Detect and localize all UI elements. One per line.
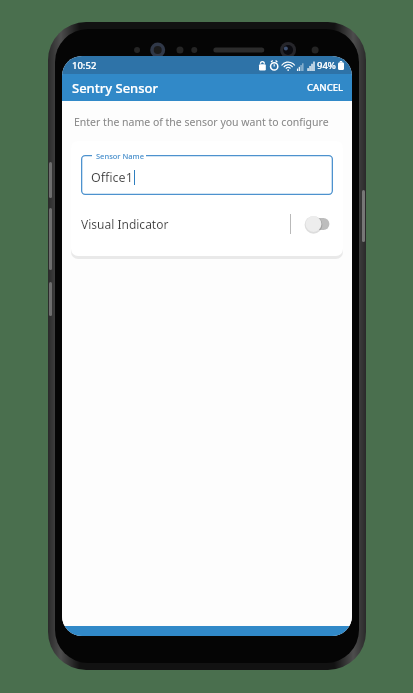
staticText: 10:52 xyxy=(72,59,97,72)
staticText: CANCEL xyxy=(307,81,344,94)
staticText: Sentry Sensor xyxy=(72,79,159,97)
staticText: 94% xyxy=(317,59,336,72)
staticText: Visual Indicator xyxy=(81,216,169,232)
staticText: Enter the name of the sensor you want to… xyxy=(74,115,329,129)
button[interactable]: Visual Indicator xyxy=(71,209,343,239)
button[interactable]: CANCEL xyxy=(299,76,352,99)
button[interactable]: Visual Indicator toggle xyxy=(303,215,333,233)
button[interactable]: Sensor Name xyxy=(81,155,333,195)
staticText: Sensor Name xyxy=(96,151,144,161)
staticText: Office1 xyxy=(91,169,133,186)
